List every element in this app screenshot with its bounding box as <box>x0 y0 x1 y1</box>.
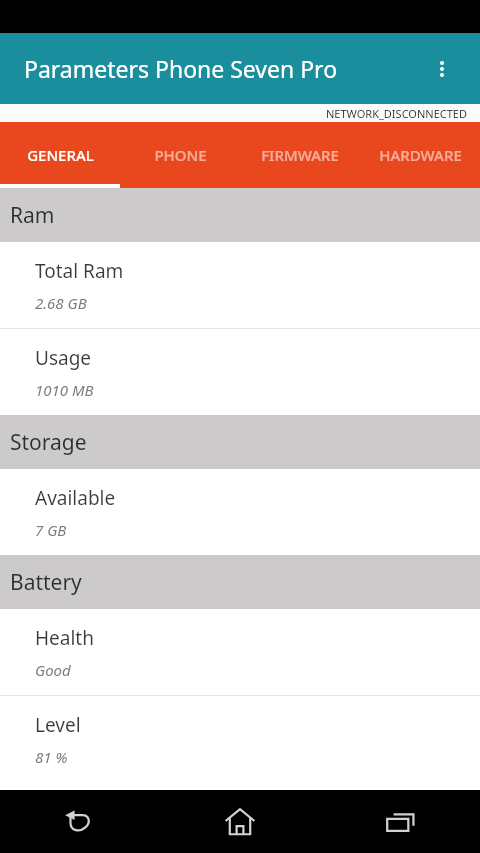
button[interactable]: HARDWARE <box>360 122 480 188</box>
button[interactable]: Total Ram <box>0 242 480 329</box>
button[interactable]: Back <box>0 790 160 853</box>
staticText: Total Ram <box>35 258 124 284</box>
staticText: HARDWARE <box>379 145 462 165</box>
staticText: Battery <box>10 568 82 597</box>
button[interactable]: FIRMWARE <box>240 122 360 188</box>
button[interactable]: Health <box>0 609 480 696</box>
staticText: FIRMWARE <box>261 145 339 165</box>
staticText: Parameters Phone Seven Pro <box>24 53 338 84</box>
staticText: Storage <box>10 428 87 457</box>
staticText: 2.68 GB <box>35 293 87 313</box>
staticText: 81 % <box>35 747 68 767</box>
button[interactable]: Level <box>0 696 480 782</box>
button[interactable]: Usage <box>0 329 480 415</box>
button[interactable]: More options <box>422 49 462 89</box>
staticText: 7 GB <box>35 520 67 540</box>
staticText: Good <box>35 660 71 680</box>
staticText: Level <box>35 712 81 738</box>
staticText: NETWORK_DISCONNECTED <box>326 106 468 121</box>
staticText: GENERAL <box>27 145 94 165</box>
staticText: Ram <box>10 201 55 230</box>
staticText: PHONE <box>154 145 207 165</box>
button[interactable]: GENERAL <box>0 122 120 188</box>
button[interactable]: Recents <box>320 790 480 853</box>
staticText: Available <box>35 485 116 511</box>
button[interactable]: PHONE <box>120 122 240 188</box>
staticText: Health <box>35 625 94 651</box>
button[interactable]: Available <box>0 469 480 555</box>
staticText: Usage <box>35 345 92 371</box>
staticText: 1010 MB <box>35 380 94 400</box>
button[interactable]: Home <box>160 790 320 853</box>
